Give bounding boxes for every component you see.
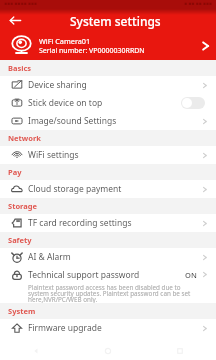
staticText: Technical support password <box>28 269 185 281</box>
staticText: Network <box>8 133 41 143</box>
button[interactable]: Device sharing <box>0 76 216 94</box>
staticText: Pay <box>8 167 22 177</box>
button[interactable]: Toggle stick device on top <box>181 97 205 109</box>
button[interactable]: Firmware upgrade <box>0 319 216 337</box>
button[interactable]: WiFi Camera01 <box>0 31 216 60</box>
staticText: System <box>8 306 36 316</box>
staticText: Cloud storage payment <box>28 183 198 195</box>
staticText: ON <box>185 270 197 280</box>
staticText: Storage <box>8 201 37 211</box>
staticText: Image/sound Settings <box>28 115 198 127</box>
button[interactable]: Back <box>0 10 31 31</box>
staticText: Stick device on top <box>28 97 181 109</box>
button[interactable]: AI & Alarm <box>0 248 216 266</box>
staticText: Device sharing <box>28 79 198 91</box>
staticText: ▪▪▪ ▪▪▪▪ ▪▪▪ <box>4 0 37 6</box>
button[interactable]: Cloud storage payment <box>0 180 216 198</box>
staticText: WiFi Camera01 <box>39 36 91 46</box>
button[interactable]: Technical support password <box>0 266 216 303</box>
staticText: Basics <box>8 63 32 73</box>
staticText: Serial number: VP0000030RRDN <box>39 46 145 56</box>
button[interactable]: TF card recording settings <box>0 214 216 232</box>
staticText: System settings <box>70 13 161 29</box>
staticText: Firmware upgrade <box>28 322 198 334</box>
button[interactable]: Stick device on top <box>0 94 216 112</box>
button[interactable]: WiFi settings <box>0 146 216 164</box>
staticText: Plaintext password access has been disab… <box>28 283 197 303</box>
staticText: ▪ ▪▪ ▪▪ ▪▪▪ <box>184 0 212 6</box>
button[interactable]: Image/sound Settings <box>0 112 216 130</box>
staticText: AI & Alarm <box>28 251 198 263</box>
staticText: TF card recording settings <box>28 217 198 229</box>
staticText: WiFi settings <box>28 149 198 161</box>
staticText: Safety <box>8 235 32 245</box>
